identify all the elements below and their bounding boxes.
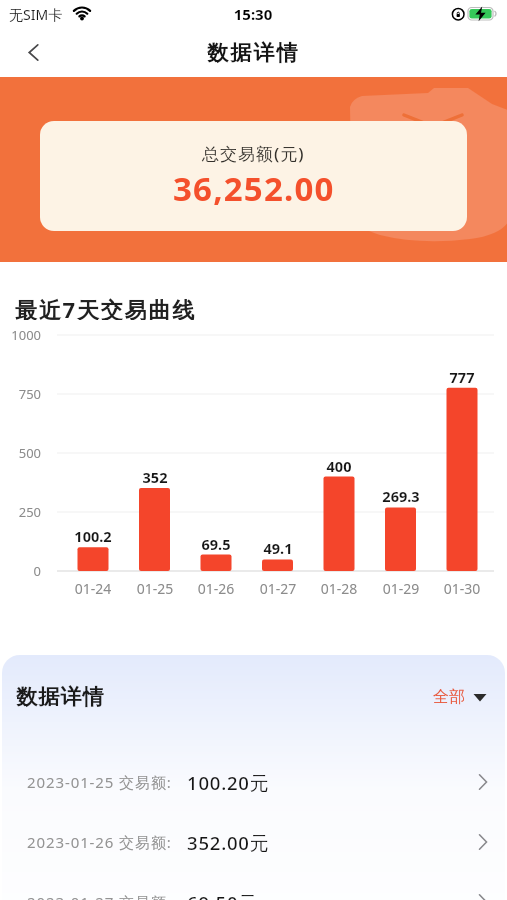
- staticText: 2023-01-27 交易额:: [27, 892, 172, 900]
- staticText: 数据详情: [16, 684, 105, 710]
- staticText: 01-24: [58, 579, 128, 598]
- staticText: 36,252.00: [173, 166, 335, 211]
- staticText: 01-27: [243, 579, 313, 598]
- button[interactable]: [3, 30, 63, 75]
- staticText: 01-30: [427, 579, 497, 598]
- staticText: 250: [0, 503, 41, 521]
- staticText: 无SIM卡: [9, 5, 71, 24]
- staticText: 750: [0, 385, 41, 403]
- staticText: 01-26: [181, 579, 251, 598]
- staticText: 2023-01-26 交易额:: [27, 832, 172, 852]
- staticText: 777: [427, 367, 497, 387]
- button[interactable]: 2023-01-25 交易额:: [2, 752, 505, 812]
- staticText: 2023-01-25 交易额:: [27, 772, 172, 792]
- staticText: 100.2: [58, 526, 128, 546]
- staticText: 01-29: [366, 579, 436, 598]
- staticText: 269.3: [366, 486, 436, 506]
- staticText: 总交易额(元): [202, 142, 305, 165]
- button[interactable]: 2023-01-26 交易额:: [2, 812, 505, 872]
- staticText: 全部: [433, 687, 465, 707]
- staticText: 500: [0, 444, 41, 462]
- staticText: 01-28: [304, 579, 374, 598]
- staticText: 352.00元: [187, 830, 270, 855]
- staticText: 最近7天交易曲线: [15, 294, 255, 320]
- staticText: 49.1: [243, 538, 313, 558]
- staticText: 1000: [0, 326, 41, 344]
- staticText: 400: [304, 456, 374, 476]
- staticText: 352: [120, 467, 190, 487]
- button[interactable]: 全部: [429, 683, 491, 711]
- staticText: 0: [0, 562, 41, 580]
- button[interactable]: 2023-01-27 交易额:: [2, 872, 505, 900]
- staticText: 100.20元: [187, 770, 270, 795]
- staticText: 69.50元: [187, 890, 258, 900]
- staticText: 数据详情: [207, 40, 300, 66]
- button[interactable]: 总交易额(元): [40, 121, 467, 231]
- staticText: 15:30: [213, 4, 293, 24]
- staticText: 69.5: [181, 534, 251, 554]
- staticText: 01-25: [120, 579, 190, 598]
